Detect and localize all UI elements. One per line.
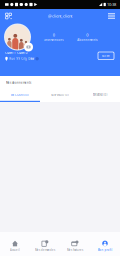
staticText: Mes abonnements bbox=[6, 81, 31, 84]
staticText: Mes demandes bbox=[35, 248, 55, 252]
staticText: Mes factures bbox=[67, 248, 83, 252]
button[interactable]: Change profile photo bbox=[3, 23, 32, 51]
staticText: 0 bbox=[53, 32, 55, 38]
staticText: Rue 99 City, Dakar bbox=[9, 57, 34, 60]
button[interactable]: SUSPENDU (0) bbox=[40, 89, 80, 102]
staticText: CLIENT1 CLIENT2 bbox=[5, 51, 28, 54]
button[interactable]: Mes demandes bbox=[30, 231, 60, 256]
staticText: SUSPENDU (0) bbox=[51, 93, 69, 97]
staticText: EN COURS (0) bbox=[11, 93, 29, 97]
button[interactable]: TERMINÉ (0) bbox=[80, 89, 120, 102]
staticText: @client_client bbox=[48, 13, 72, 19]
staticText: Mon profil bbox=[97, 248, 112, 252]
staticText: EDITER bbox=[102, 54, 110, 57]
staticText: 10:38 bbox=[107, 2, 116, 7]
staticText: TERMINÉ (0) bbox=[92, 93, 107, 97]
button[interactable]: EDITER bbox=[98, 52, 114, 59]
staticText: Abonnements bbox=[77, 38, 97, 42]
button[interactable]: Scan QR code bbox=[3, 10, 14, 21]
button[interactable]: Mon profil bbox=[90, 231, 120, 256]
staticText: Accueil bbox=[10, 248, 20, 252]
button[interactable]: Menu bbox=[106, 10, 117, 21]
staticText: Interventions bbox=[44, 38, 63, 42]
button[interactable]: EN COURS (0) bbox=[0, 89, 40, 102]
button[interactable]: Mes factures bbox=[60, 231, 90, 256]
staticText: 0 bbox=[86, 32, 88, 38]
button[interactable]: Accueil bbox=[0, 231, 30, 256]
